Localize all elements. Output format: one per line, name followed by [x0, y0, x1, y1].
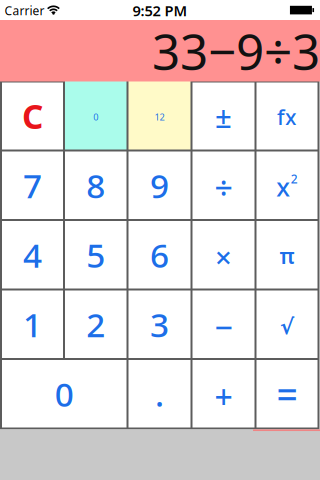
staticText: 4	[23, 233, 42, 277]
staticText: 2	[291, 171, 298, 187]
staticText: 0	[55, 372, 74, 416]
button[interactable]: =	[256, 360, 317, 427]
staticText: Carrier	[4, 2, 44, 18]
button[interactable]: ±	[192, 82, 254, 149]
staticText: 6	[150, 233, 169, 277]
staticText: ÷	[214, 166, 232, 208]
button[interactable]: ÷	[192, 151, 254, 219]
staticText: 1	[23, 302, 42, 346]
button[interactable]: C	[2, 82, 63, 149]
button[interactable]: 8	[65, 151, 126, 219]
button[interactable]: .	[128, 360, 190, 427]
button[interactable]: 2	[65, 290, 126, 358]
staticText: 9	[150, 163, 169, 207]
button[interactable]: 4	[2, 221, 63, 288]
staticText: 5	[86, 233, 105, 277]
staticText: −	[214, 305, 232, 348]
button[interactable]: 5	[65, 221, 126, 288]
staticText: =	[276, 369, 297, 419]
staticText: ±	[215, 97, 232, 136]
button[interactable]: ×	[192, 221, 254, 288]
staticText: √	[280, 315, 294, 339]
staticText: 8	[86, 163, 105, 207]
staticText: .	[155, 372, 164, 416]
staticText: 33−9÷3	[152, 18, 320, 83]
staticText: π	[279, 242, 294, 270]
button[interactable]: 0	[2, 360, 126, 427]
staticText: 3	[150, 302, 169, 346]
button[interactable]: 9	[128, 151, 190, 219]
button[interactable]: √	[256, 290, 317, 358]
staticText: ×	[215, 237, 232, 276]
staticText: x	[276, 170, 290, 203]
staticText: C	[22, 94, 43, 138]
button[interactable]: 12	[128, 80, 190, 149]
button[interactable]: 6	[128, 221, 190, 288]
button[interactable]: 0	[65, 80, 126, 149]
staticText: 0	[93, 111, 98, 123]
staticText: 7	[23, 163, 42, 207]
staticText: 2	[86, 302, 105, 346]
button[interactable]: 7	[2, 151, 63, 219]
button[interactable]: x	[256, 151, 317, 219]
button[interactable]: +	[192, 360, 254, 427]
button[interactable]: fx	[256, 82, 317, 149]
button[interactable]: π	[256, 221, 317, 288]
staticText: 9:52 PM	[132, 1, 187, 20]
staticText: fx	[277, 103, 297, 131]
button[interactable]: 1	[2, 290, 63, 358]
button[interactable]: −	[192, 290, 254, 358]
staticText: +	[214, 375, 232, 418]
staticText: 12	[154, 111, 164, 123]
button[interactable]: 3	[128, 290, 190, 358]
